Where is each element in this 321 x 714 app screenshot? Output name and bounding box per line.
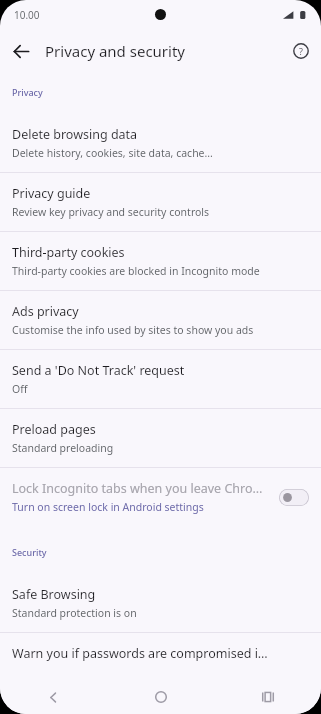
- staticText: Warn you if passwords are compromised i…: [12, 645, 268, 662]
- staticText: Privacy: [12, 86, 43, 98]
- staticText: Send a 'Do Not Track' request: [12, 362, 185, 379]
- staticText: Review key privacy and security controls: [12, 205, 210, 219]
- staticText: 10.00: [14, 8, 40, 22]
- button[interactable]: Lock Incognito tabs toggle: [279, 489, 309, 506]
- staticText: Customise the info used by sites to show…: [12, 323, 254, 337]
- button[interactable]: Delete browsing data: [0, 114, 321, 172]
- staticText: Privacy guide: [12, 185, 91, 202]
- button[interactable]: Back: [0, 680, 107, 714]
- button[interactable]: Recent apps: [214, 680, 321, 714]
- staticText: Delete history, cookies, site data, cach…: [12, 146, 213, 160]
- staticText: Standard protection is on: [12, 606, 137, 620]
- button[interactable]: Lock Incognito tabs when you leave Chrom…: [0, 468, 321, 526]
- button[interactable]: Safe Browsing: [0, 574, 321, 632]
- button[interactable]: Help: [285, 35, 317, 67]
- button[interactable]: Back: [4, 34, 38, 68]
- staticText: Third-party cookies: [12, 244, 125, 261]
- staticText: Delete browsing data: [12, 126, 138, 143]
- staticText: Lock Incognito tabs when you leave Chrom…: [12, 480, 271, 497]
- staticText: Third-party cookies are blocked in Incog…: [12, 264, 260, 278]
- staticText: Turn on screen lock in Android settings: [12, 500, 204, 514]
- staticText: Privacy and security: [45, 41, 185, 61]
- staticText: Preload pages: [12, 421, 96, 438]
- button[interactable]: Home: [107, 680, 214, 714]
- staticText: ?: [299, 45, 303, 57]
- staticText: Ads privacy: [12, 303, 79, 320]
- button[interactable]: Send a 'Do Not Track' request: [0, 350, 321, 408]
- staticText: Standard preloading: [12, 441, 114, 455]
- button[interactable]: Ads privacy: [0, 291, 321, 349]
- staticText: Off: [12, 382, 28, 396]
- button[interactable]: Privacy guide: [0, 173, 321, 231]
- staticText: Safe Browsing: [12, 586, 96, 603]
- button[interactable]: Preload pages: [0, 409, 321, 467]
- button[interactable]: Third-party cookies: [0, 232, 321, 290]
- staticText: Security: [12, 546, 47, 558]
- button[interactable]: Warn you if passwords are compromised i…: [0, 633, 321, 691]
